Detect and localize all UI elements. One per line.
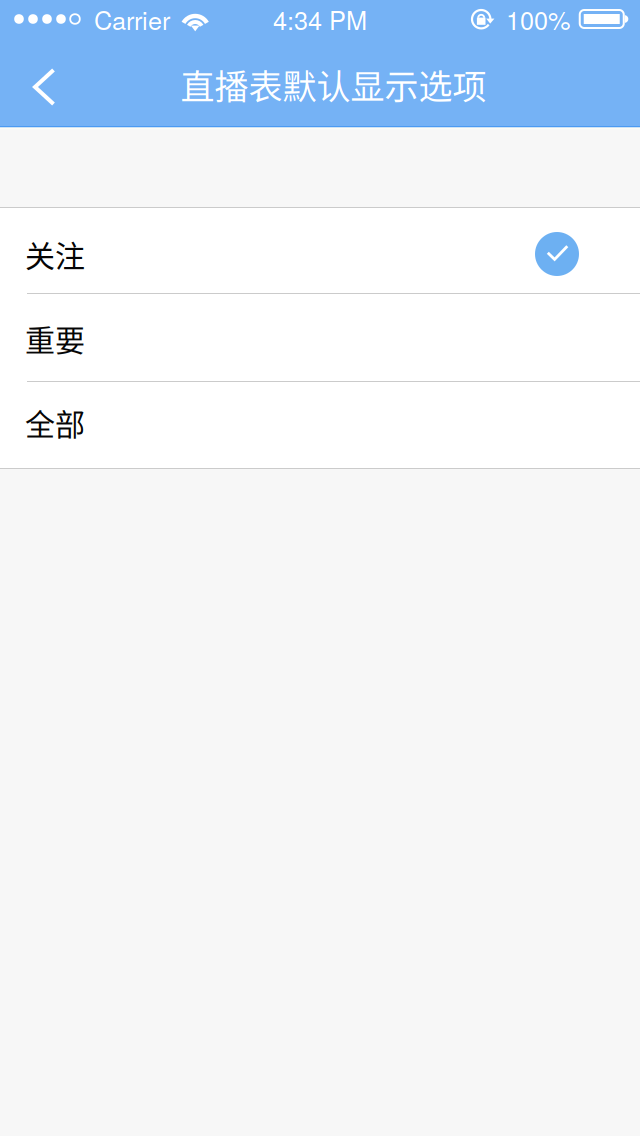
staticText: 直播表默认显示选项 bbox=[180, 60, 486, 109]
staticText: 100% bbox=[506, 1, 571, 37]
staticText: 4:34 PM bbox=[273, 1, 367, 37]
staticText: 全部 bbox=[25, 401, 85, 444]
staticText: Carrier bbox=[94, 1, 170, 37]
staticText: 重要 bbox=[25, 317, 85, 360]
button[interactable]: 关注 bbox=[0, 208, 640, 293]
button[interactable]: 重要 bbox=[0, 294, 640, 381]
button[interactable]: Back bbox=[0, 39, 88, 127]
button[interactable]: 全部 bbox=[0, 382, 640, 468]
staticText: 关注 bbox=[25, 232, 85, 276]
